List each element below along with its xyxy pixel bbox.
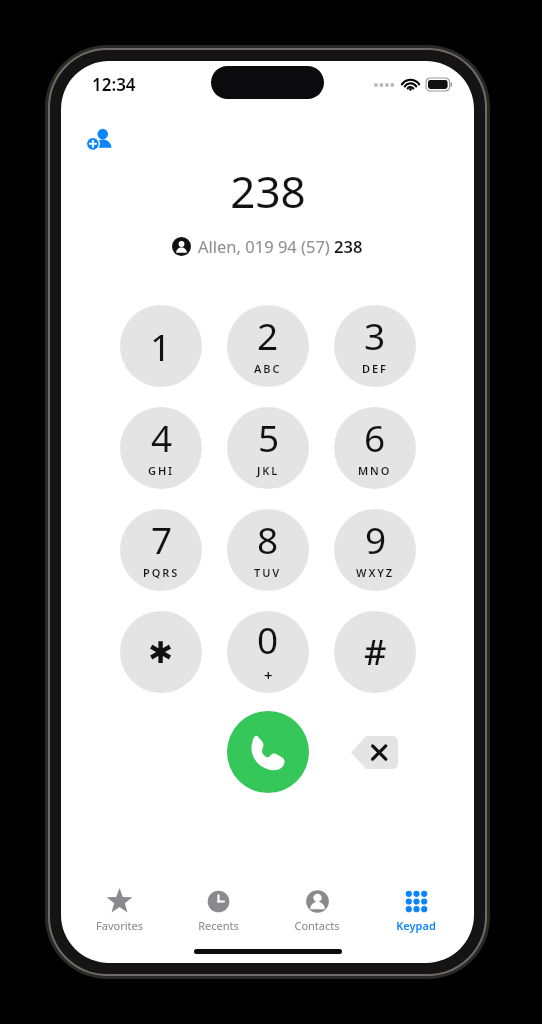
staticText: 5 <box>258 412 280 462</box>
staticText: ✱ <box>148 635 174 670</box>
button[interactable]: 4 <box>120 407 202 489</box>
staticText: Contacts <box>294 918 340 933</box>
button[interactable]: # <box>334 611 416 693</box>
staticText: Favorites <box>96 918 143 933</box>
button[interactable]: 2 <box>227 305 309 387</box>
staticText: GHI <box>148 463 175 478</box>
button[interactable]: Call <box>227 711 309 793</box>
staticText: 0 <box>257 614 279 664</box>
staticText: 9 <box>365 514 387 564</box>
staticText: MNO <box>358 463 392 478</box>
button[interactable]: Recents <box>177 885 259 933</box>
staticText: 12:34 <box>92 73 136 96</box>
staticText: Recents <box>198 918 239 933</box>
button[interactable]: 6 <box>334 407 416 489</box>
button[interactable]: 0 <box>227 611 309 693</box>
button[interactable]: Delete <box>351 736 398 769</box>
staticText: DEF <box>362 361 388 376</box>
button[interactable]: Contacts <box>276 885 358 933</box>
button[interactable]: 5 <box>227 407 309 489</box>
staticText: 7 <box>151 514 173 564</box>
staticText: 8 <box>257 514 279 564</box>
button[interactable]: 3 <box>334 305 416 387</box>
staticText: TUV <box>254 565 282 580</box>
staticText: 238 <box>230 161 306 221</box>
staticText: 6 <box>364 412 386 462</box>
button[interactable]: 1 <box>120 305 202 387</box>
button[interactable]: 8 <box>227 509 309 591</box>
button[interactable]: Keypad <box>375 885 457 933</box>
staticText: PQRS <box>143 565 180 580</box>
button[interactable]: Add contact <box>79 119 119 159</box>
button[interactable]: Favorites <box>78 885 160 933</box>
staticText: 1 <box>150 321 172 371</box>
staticText: JKL <box>257 463 280 478</box>
staticText: # <box>364 628 387 676</box>
staticText: ABC <box>254 361 282 376</box>
staticText: 4 <box>151 412 173 462</box>
button[interactable]: Allen, 019 94 (57) 238 <box>61 235 474 257</box>
staticText: Allen, 019 94 (57) 238 <box>198 235 363 257</box>
button[interactable]: ✱ <box>120 611 202 693</box>
staticText: Keypad <box>396 918 436 933</box>
staticText: 3 <box>364 310 386 360</box>
button[interactable]: 7 <box>120 509 202 591</box>
staticText: WXYZ <box>356 565 395 580</box>
button[interactable]: 9 <box>334 509 416 591</box>
staticText: + <box>264 665 273 685</box>
staticText: 2 <box>257 310 279 360</box>
